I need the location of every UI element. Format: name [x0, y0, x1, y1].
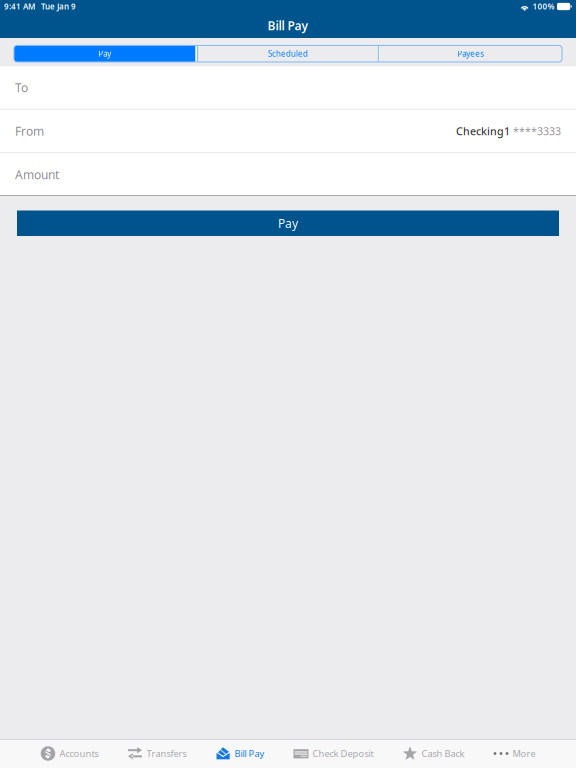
staticText: Bill Pay	[267, 17, 308, 33]
staticText: Cash Back	[421, 747, 464, 760]
staticText: Tue Jan 9	[41, 1, 76, 12]
staticText: Pay	[98, 48, 111, 59]
staticText: ****3333	[513, 124, 561, 138]
staticText: Bill Pay	[234, 747, 264, 760]
button[interactable]: Transfers	[127, 738, 186, 768]
staticText: From	[15, 123, 44, 139]
staticText: Payees	[457, 48, 484, 59]
button[interactable]: More	[493, 738, 535, 768]
staticText: Amount	[15, 166, 59, 182]
button[interactable]: Accounts	[40, 738, 98, 768]
staticText: Accounts	[59, 747, 98, 760]
staticText: More	[512, 747, 535, 760]
button[interactable]: Amount	[0, 153, 576, 196]
button[interactable]: From	[0, 110, 576, 152]
button[interactable]: Pay	[17, 210, 559, 236]
button[interactable]: Check Deposit	[293, 738, 373, 768]
button[interactable]: Cash Back	[402, 738, 464, 768]
staticText: 9:41 AM	[4, 1, 35, 12]
staticText: Check Deposit	[312, 747, 373, 760]
staticText: Scheduled	[268, 48, 308, 59]
staticText: 100%	[532, 1, 554, 12]
staticText: To	[15, 79, 28, 95]
staticText: Transfers	[146, 747, 186, 760]
button[interactable]: Bill Pay	[215, 738, 264, 768]
staticText: Pay	[278, 215, 298, 231]
button[interactable]: Scheduled	[198, 45, 378, 62]
staticText: Checking1	[456, 124, 510, 138]
button[interactable]: Pay	[14, 45, 195, 62]
button[interactable]: Payees	[379, 45, 562, 62]
button[interactable]: To	[0, 66, 576, 109]
